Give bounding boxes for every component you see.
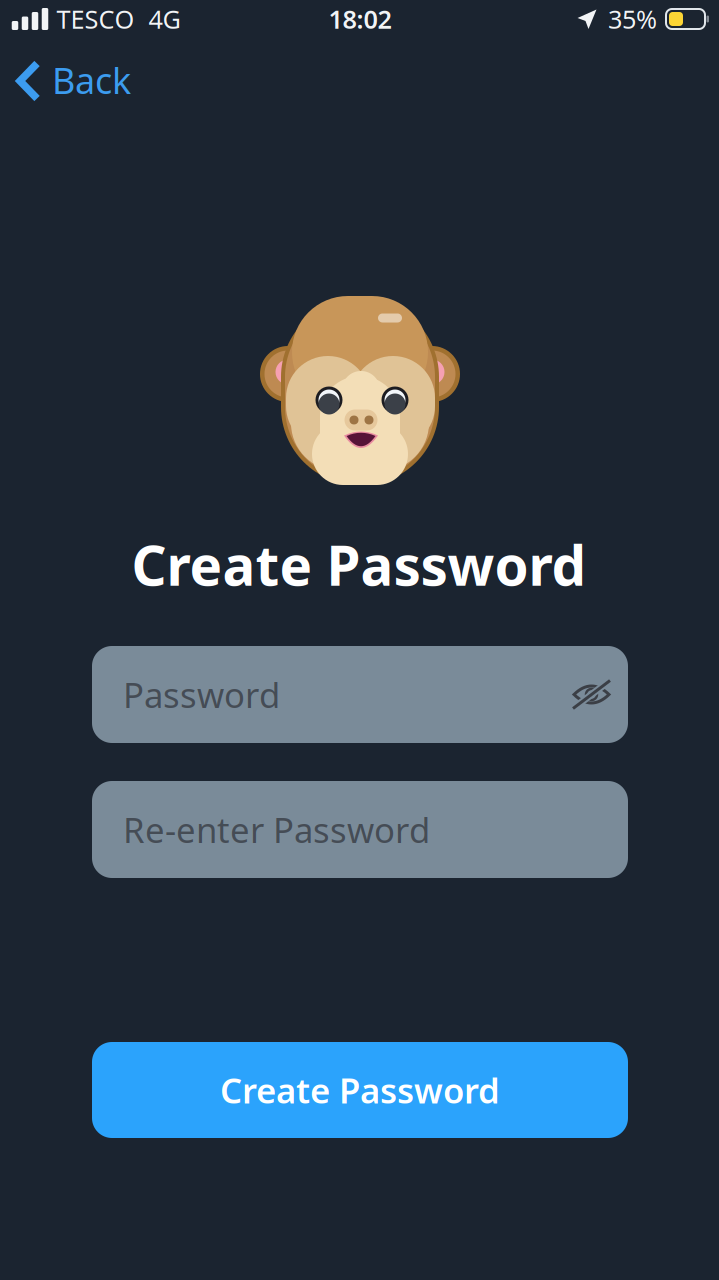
staticText: Back [52, 56, 131, 104]
staticText: Re-enter Password [123, 806, 430, 852]
staticText: Create Password [131, 528, 586, 601]
staticText: Password [123, 671, 280, 717]
staticText: 18:02 [328, 2, 391, 36]
staticText: 4G [148, 2, 180, 36]
staticText: Create Password [220, 1067, 500, 1113]
button[interactable]: Back [1, 47, 145, 115]
button[interactable]: Create Password [92, 1042, 628, 1138]
button[interactable]: Show password [569, 672, 614, 716]
staticText: TESCO [56, 2, 134, 36]
staticText: 35% [608, 2, 657, 36]
